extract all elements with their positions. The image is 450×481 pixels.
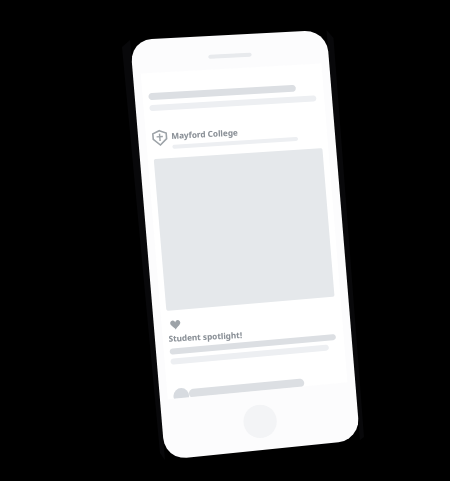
button[interactable]: Mayford College feed post — [0, 0, 450, 481]
